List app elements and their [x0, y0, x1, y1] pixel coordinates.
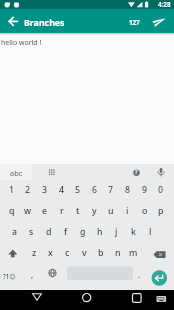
button[interactable]: w: [19, 200, 36, 221]
staticText: 9: [142, 184, 148, 196]
staticText: h: [97, 226, 103, 238]
button[interactable]: [151, 269, 168, 286]
staticText: n: [115, 247, 121, 259]
staticText: .: [138, 269, 141, 280]
staticText: 3: [42, 184, 48, 196]
staticText: 5: [75, 184, 81, 196]
button[interactable]: d: [40, 221, 57, 242]
staticText: hello world !: [1, 38, 42, 48]
staticText: f: [64, 226, 68, 238]
button[interactable]: [25, 290, 49, 310]
button[interactable]: b: [92, 242, 109, 263]
button[interactable]: ?1☺: [1, 265, 18, 286]
button[interactable]: 3: [36, 179, 53, 200]
button[interactable]: [152, 164, 170, 180]
staticText: q: [9, 205, 15, 217]
staticText: ,: [31, 269, 34, 280]
staticText: 4:28: [158, 0, 171, 9]
staticText: g: [80, 226, 86, 238]
staticText: i: [126, 205, 129, 217]
staticText: c: [65, 247, 70, 259]
button[interactable]: 7: [102, 179, 119, 200]
button[interactable]: [146, 9, 174, 33]
button[interactable]: 1: [3, 179, 20, 200]
button[interactable]: 5: [69, 179, 86, 200]
button[interactable]: [75, 290, 99, 310]
staticText: m: [129, 247, 138, 259]
staticText: k: [131, 226, 136, 238]
button[interactable]: z: [26, 242, 43, 263]
staticText: o: [142, 205, 148, 217]
button[interactable]: r: [53, 200, 70, 221]
staticText: j: [115, 226, 118, 238]
button[interactable]: x: [42, 242, 59, 263]
staticText: ?: [135, 169, 138, 176]
staticText: 127: [129, 18, 140, 26]
button[interactable]: s: [23, 221, 40, 242]
staticText: a: [12, 226, 18, 238]
staticText: s: [29, 226, 34, 238]
staticText: 4: [59, 184, 65, 196]
staticText: v: [82, 247, 87, 259]
button[interactable]: q: [3, 200, 20, 221]
staticText: 6: [92, 184, 98, 196]
button[interactable]: l: [142, 221, 159, 242]
staticText: e: [42, 205, 48, 217]
button[interactable]: [2, 243, 23, 264]
button[interactable]: [149, 243, 172, 264]
button[interactable]: v: [76, 242, 93, 263]
button[interactable]: 6: [86, 179, 103, 200]
button[interactable]: [0, 9, 22, 33]
button[interactable]: [152, 290, 174, 310]
staticText: d: [46, 226, 52, 238]
button[interactable]: y: [86, 200, 103, 221]
staticText: 7: [108, 184, 114, 196]
button[interactable]: i: [119, 200, 136, 221]
button[interactable]: [42, 264, 63, 285]
button[interactable]: ,: [24, 264, 41, 285]
staticText: z: [32, 247, 37, 259]
button[interactable]: [40, 164, 62, 180]
staticText: t: [76, 205, 80, 217]
button[interactable]: p: [152, 200, 169, 221]
button[interactable]: .: [131, 264, 148, 285]
staticText: Branches: [24, 17, 65, 29]
staticText: 2: [25, 184, 31, 196]
button[interactable]: h: [91, 221, 108, 242]
button[interactable]: 9: [136, 179, 153, 200]
staticText: p: [158, 205, 164, 217]
button[interactable]: [125, 290, 149, 310]
button[interactable]: [128, 164, 146, 180]
button[interactable]: n: [109, 242, 126, 263]
button[interactable]: f: [57, 221, 74, 242]
button[interactable]: e: [36, 200, 53, 221]
button[interactable]: 2: [19, 179, 36, 200]
staticText: b: [98, 247, 104, 259]
staticText: y: [92, 205, 97, 217]
button[interactable]: j: [108, 221, 125, 242]
staticText: u: [108, 205, 114, 217]
staticText: abc: [10, 168, 23, 178]
button[interactable]: t: [69, 200, 86, 221]
staticText: 0: [158, 184, 164, 196]
button[interactable]: 8: [119, 179, 136, 200]
staticText: ?1☺: [3, 272, 16, 280]
staticText: x: [48, 247, 53, 259]
staticText: r: [60, 205, 64, 217]
button[interactable]: u: [102, 200, 119, 221]
button[interactable]: 4: [53, 179, 70, 200]
staticText: 8: [125, 184, 131, 196]
staticText: w: [24, 205, 32, 217]
button[interactable]: m: [125, 242, 142, 263]
staticText: l: [149, 226, 152, 238]
button[interactable]: 0: [152, 179, 169, 200]
button[interactable]: k: [125, 221, 142, 242]
button[interactable]: a: [6, 221, 23, 242]
button[interactable]: abc: [0, 164, 32, 180]
button[interactable]: c: [59, 242, 76, 263]
button[interactable]: o: [136, 200, 153, 221]
staticText: 1: [9, 184, 15, 196]
button[interactable]: g: [74, 221, 91, 242]
